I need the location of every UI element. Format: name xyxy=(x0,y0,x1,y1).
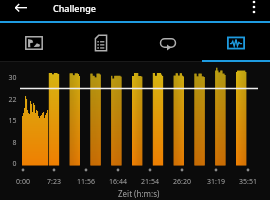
staticText: Challenge xyxy=(53,2,96,14)
button[interactable]: More options xyxy=(244,0,264,20)
button[interactable]: Laps xyxy=(134,23,202,62)
button[interactable]: Back xyxy=(9,0,33,21)
button[interactable]: Graph xyxy=(202,23,270,62)
button[interactable]: Details xyxy=(67,23,134,62)
button[interactable]: Map xyxy=(0,23,67,62)
